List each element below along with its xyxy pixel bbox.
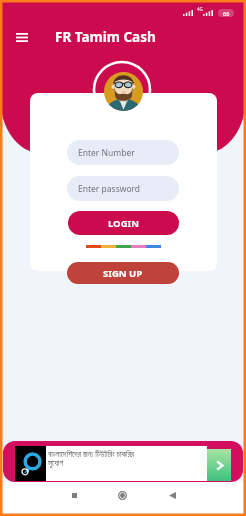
button[interactable]: SIGN UP <box>67 262 179 284</box>
button[interactable] <box>3 441 243 482</box>
button[interactable]: Enter password <box>67 176 179 201</box>
button[interactable]: Home <box>110 483 134 507</box>
staticText: Enter password <box>78 183 141 195</box>
staticText: FR Tamim Cash <box>55 28 156 46</box>
staticText: 4G <box>197 6 203 12</box>
staticText: Enter Number <box>78 147 135 159</box>
button[interactable]: Menu <box>11 26 33 48</box>
button[interactable]: Recents <box>62 483 86 507</box>
staticText: SIGN UP <box>103 267 143 280</box>
button[interactable]: Open ad <box>207 449 231 481</box>
button[interactable]: Back <box>160 483 184 507</box>
button[interactable]: Enter Number <box>67 140 179 165</box>
staticText: 66 <box>223 10 230 17</box>
button[interactable]: LOGIN <box>68 211 179 235</box>
staticText: বাংলাদেশিদের জন্য টিউটরিং চাকরির সুযোগ <box>48 448 134 468</box>
staticText: LOGIN <box>108 217 139 230</box>
